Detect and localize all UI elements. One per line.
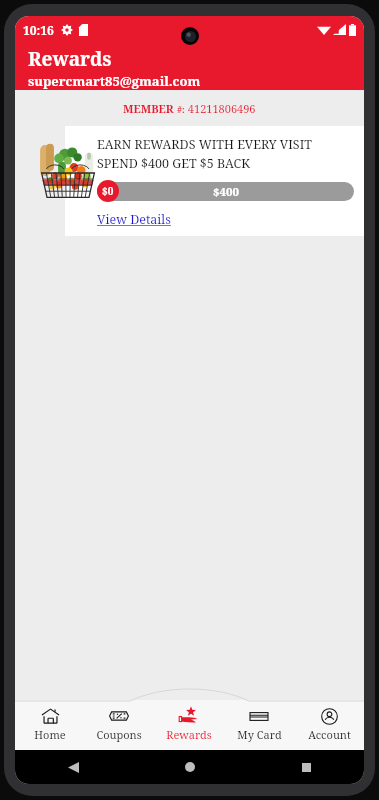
button[interactable]: Rewards: [154, 700, 224, 750]
staticText: $400: [213, 184, 239, 200]
button[interactable]: EARN REWARDS WITH EVERY VISIT: [65, 126, 364, 236]
staticText: View Details: [97, 211, 171, 228]
button[interactable]: Home: [132, 750, 248, 784]
staticText: 41211806496: [185, 101, 256, 116]
button[interactable]: View Details: [97, 211, 171, 228]
staticText: SPEND $400 GET $5 BACK: [97, 155, 250, 172]
staticText: Home: [34, 727, 66, 742]
button[interactable]: My Card: [224, 700, 294, 750]
staticText: Rewards: [28, 46, 112, 72]
staticText: supercmart85@gmail.com: [28, 72, 201, 90]
staticText: Account: [308, 727, 351, 742]
staticText: $0: [102, 184, 114, 198]
staticText: Rewards: [166, 727, 212, 742]
button[interactable]: Back: [15, 750, 132, 784]
staticText: #:: [177, 103, 185, 115]
staticText: My Card: [237, 727, 282, 742]
staticText: MEMBER: [123, 101, 177, 116]
button[interactable]: Recent apps: [248, 750, 364, 784]
button[interactable]: Account: [294, 700, 364, 750]
button[interactable]: Coupons: [84, 700, 154, 750]
staticText: 10:16: [23, 22, 54, 38]
staticText: Coupons: [96, 727, 142, 742]
staticText: EARN REWARDS WITH EVERY VISIT: [97, 136, 312, 153]
button[interactable]: Home: [15, 700, 84, 750]
